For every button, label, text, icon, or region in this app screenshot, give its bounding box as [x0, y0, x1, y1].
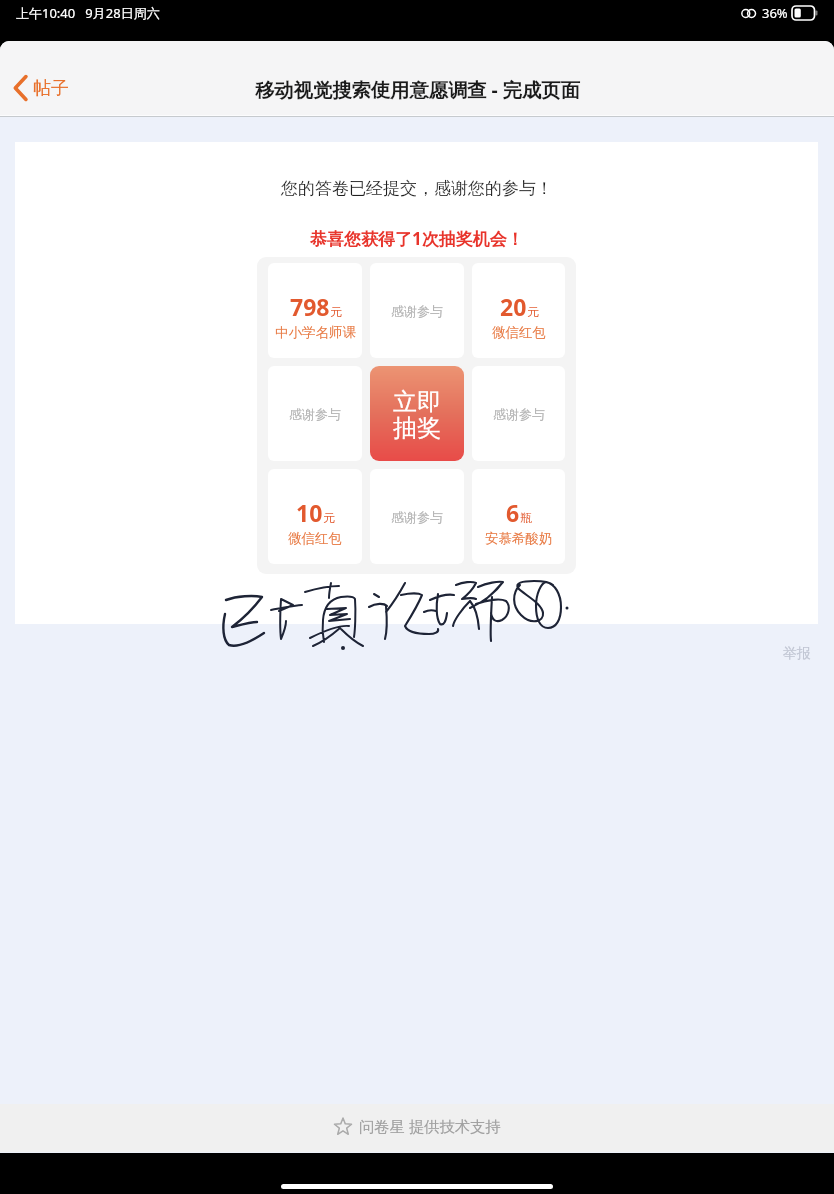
staticText: 上午10:40 9月28日周六 [16, 4, 160, 22]
button[interactable]: 感谢参与 [370, 263, 464, 358]
staticText: 移动视觉搜索使用意愿调查 - 完成页面 [255, 76, 580, 102]
button[interactable]: 6 [472, 469, 565, 564]
button[interactable]: 感谢参与 [268, 366, 362, 461]
other: Handwritten note [215, 575, 600, 657]
button[interactable]: 问卷星 提供技术支持 [328, 1110, 507, 1143]
staticText: 瓶 [520, 510, 532, 525]
staticText: 微信红包 [492, 324, 546, 341]
staticText: 元 [527, 304, 539, 319]
button[interactable]: 感谢参与 [370, 469, 464, 564]
button[interactable]: 10 [268, 469, 362, 564]
staticText: 恭喜您获得了1次抽奖机会！ [310, 227, 524, 250]
staticText: 36% [762, 4, 788, 22]
button[interactable]: 立即 抽奖 [370, 366, 464, 461]
button[interactable]: 798 [268, 263, 362, 358]
staticText: 中小学名师课 [275, 324, 356, 341]
staticText: 元 [330, 304, 342, 319]
staticText: 10 [296, 497, 323, 528]
staticText: 6 [506, 497, 520, 528]
button[interactable]: Back to 帖子 [0, 65, 87, 111]
staticText: 微信红包 [288, 530, 342, 547]
button[interactable]: 举报 [783, 645, 811, 663]
staticText: 帖子 [33, 77, 69, 100]
staticText: 感谢参与 [391, 509, 443, 525]
button[interactable]: 20 [472, 263, 565, 358]
staticText: 20 [500, 291, 527, 322]
staticText: 感谢参与 [493, 406, 545, 422]
button[interactable]: 感谢参与 [472, 366, 565, 461]
staticText: 立即 抽奖 [393, 387, 441, 444]
staticText: 798 [290, 291, 330, 322]
staticText: 感谢参与 [391, 303, 443, 319]
staticText: 您的答卷已经提交，感谢您的参与！ [281, 178, 553, 199]
staticText: 问卷星 提供技术支持 [359, 1116, 501, 1137]
staticText: 元 [323, 510, 335, 525]
staticText: 安慕希酸奶 [485, 530, 553, 547]
staticText: 感谢参与 [289, 406, 341, 422]
